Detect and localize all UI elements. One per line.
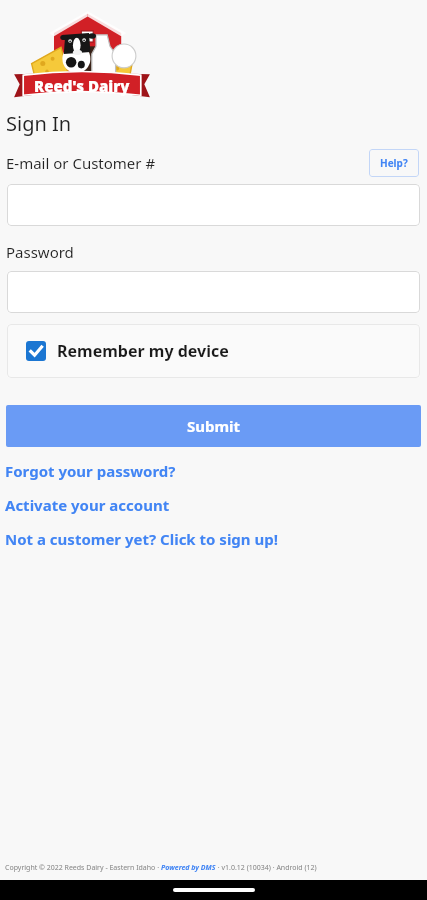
button[interactable]: Submit — [6, 405, 421, 447]
staticText: Remember my device — [57, 340, 229, 362]
staticText: Reed's Dairy — [34, 76, 130, 96]
button[interactable]: Forgot your password? — [5, 461, 176, 481]
button[interactable]: Help? — [369, 149, 419, 177]
button[interactable] — [7, 184, 420, 226]
button[interactable]: Powered by DMS — [161, 863, 216, 873]
staticText: Help? — [380, 156, 408, 170]
button[interactable]: Not a customer yet? Click to sign up! — [5, 529, 278, 549]
button[interactable]: Activate your account — [5, 495, 170, 515]
staticText: Activate your account — [5, 495, 170, 515]
staticText: Sign In — [6, 110, 72, 137]
other: Reed's Dairy logo — [12, 6, 152, 102]
staticText: Submit — [187, 416, 241, 436]
button[interactable]: Remember my device — [7, 324, 420, 378]
staticText: · v1.0.12 (10034) · Android (12) — [216, 863, 317, 873]
staticText: E-mail or Customer # — [6, 153, 156, 173]
button[interactable] — [7, 271, 420, 313]
staticText: Password — [6, 242, 74, 262]
staticText: Forgot your password? — [5, 461, 176, 481]
staticText: Not a customer yet? Click to sign up! — [5, 529, 278, 549]
staticText: Copyright © 2022 Reeds Dairy - Eastern I… — [5, 863, 161, 873]
